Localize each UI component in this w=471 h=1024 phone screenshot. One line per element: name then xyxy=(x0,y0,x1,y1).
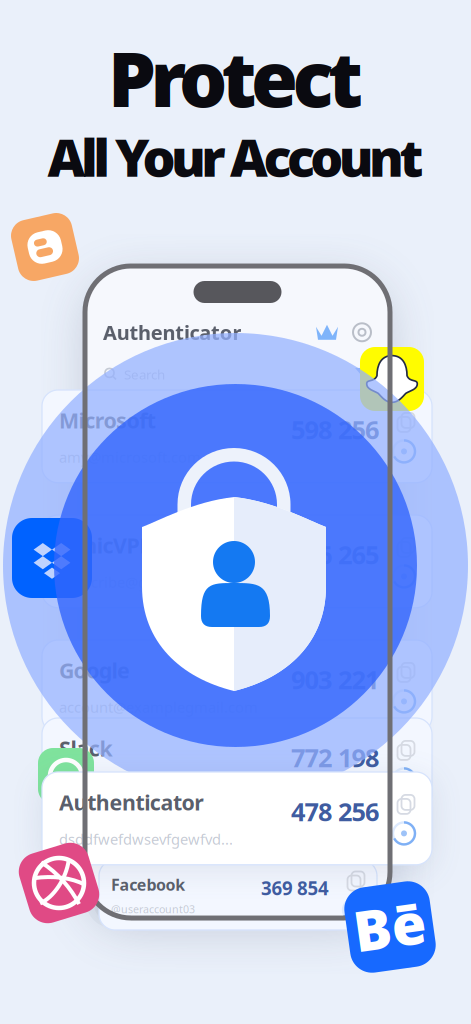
staticText: Google xyxy=(59,656,130,684)
staticText: Facebook xyxy=(111,874,185,895)
button[interactable]: Dropbox xyxy=(12,518,92,598)
button[interactable]: Snapchat xyxy=(360,347,424,411)
staticText: Microsoft xyxy=(59,406,156,434)
staticText: 772 198 xyxy=(291,741,379,774)
staticText: SonicVPN xyxy=(59,531,156,559)
staticText: we one have org... xyxy=(59,775,185,795)
button[interactable]: Microsoft xyxy=(42,390,432,483)
staticText: Slack xyxy=(59,734,112,762)
staticText: subscribe@gmail.com xyxy=(59,572,211,592)
staticText: 598 256 xyxy=(291,413,379,446)
button[interactable]: Premium xyxy=(316,324,338,341)
button[interactable]: Blogger xyxy=(14,216,76,278)
staticText: Search xyxy=(124,366,165,383)
staticText: @useraccount03 xyxy=(111,902,195,916)
button[interactable]: Settings xyxy=(352,322,372,342)
staticText: dsddfwefdwsevfgewfvd... xyxy=(59,829,233,849)
staticText: 369 854 xyxy=(261,876,329,900)
staticText: 903 221 xyxy=(291,663,379,696)
button[interactable]: Facebook xyxy=(99,860,377,930)
staticText: All Your Account xyxy=(47,122,423,191)
staticText: account@examplegmail.com xyxy=(59,697,258,717)
staticText: Protect xyxy=(108,27,363,128)
staticText: Authenticator xyxy=(103,319,241,346)
staticText: Authenticator xyxy=(59,788,204,816)
button[interactable]: Slack xyxy=(42,718,432,811)
button[interactable]: Dribbble xyxy=(23,847,95,919)
staticText: Bē xyxy=(353,889,426,963)
button[interactable]: SonicVPN xyxy=(42,515,432,608)
button[interactable]: Behance xyxy=(347,884,433,970)
staticText: amy@microsoft.com xyxy=(59,447,201,467)
staticText: 156 265 xyxy=(291,538,379,571)
staticText: 478 256 xyxy=(291,795,379,828)
button[interactable]: Google xyxy=(42,640,432,733)
button[interactable]: Authenticator xyxy=(42,772,432,865)
